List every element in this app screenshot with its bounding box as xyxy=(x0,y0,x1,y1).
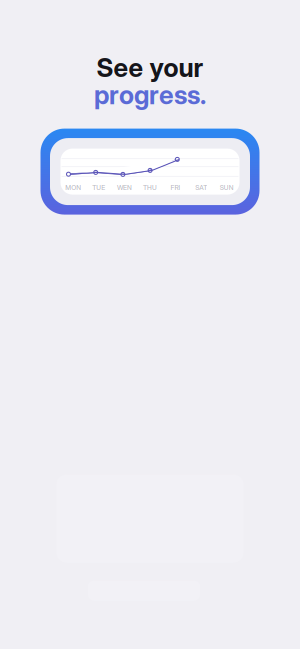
staticText: TUE xyxy=(92,184,105,192)
staticText: See your xyxy=(96,52,203,83)
staticText: SUN xyxy=(220,184,234,192)
staticText: THU xyxy=(143,184,157,192)
staticText: MON xyxy=(65,184,81,192)
staticText: WEN xyxy=(117,184,132,192)
staticText: progress. xyxy=(94,79,206,111)
staticText: SAT xyxy=(195,184,207,192)
staticText: FRI xyxy=(171,184,181,192)
